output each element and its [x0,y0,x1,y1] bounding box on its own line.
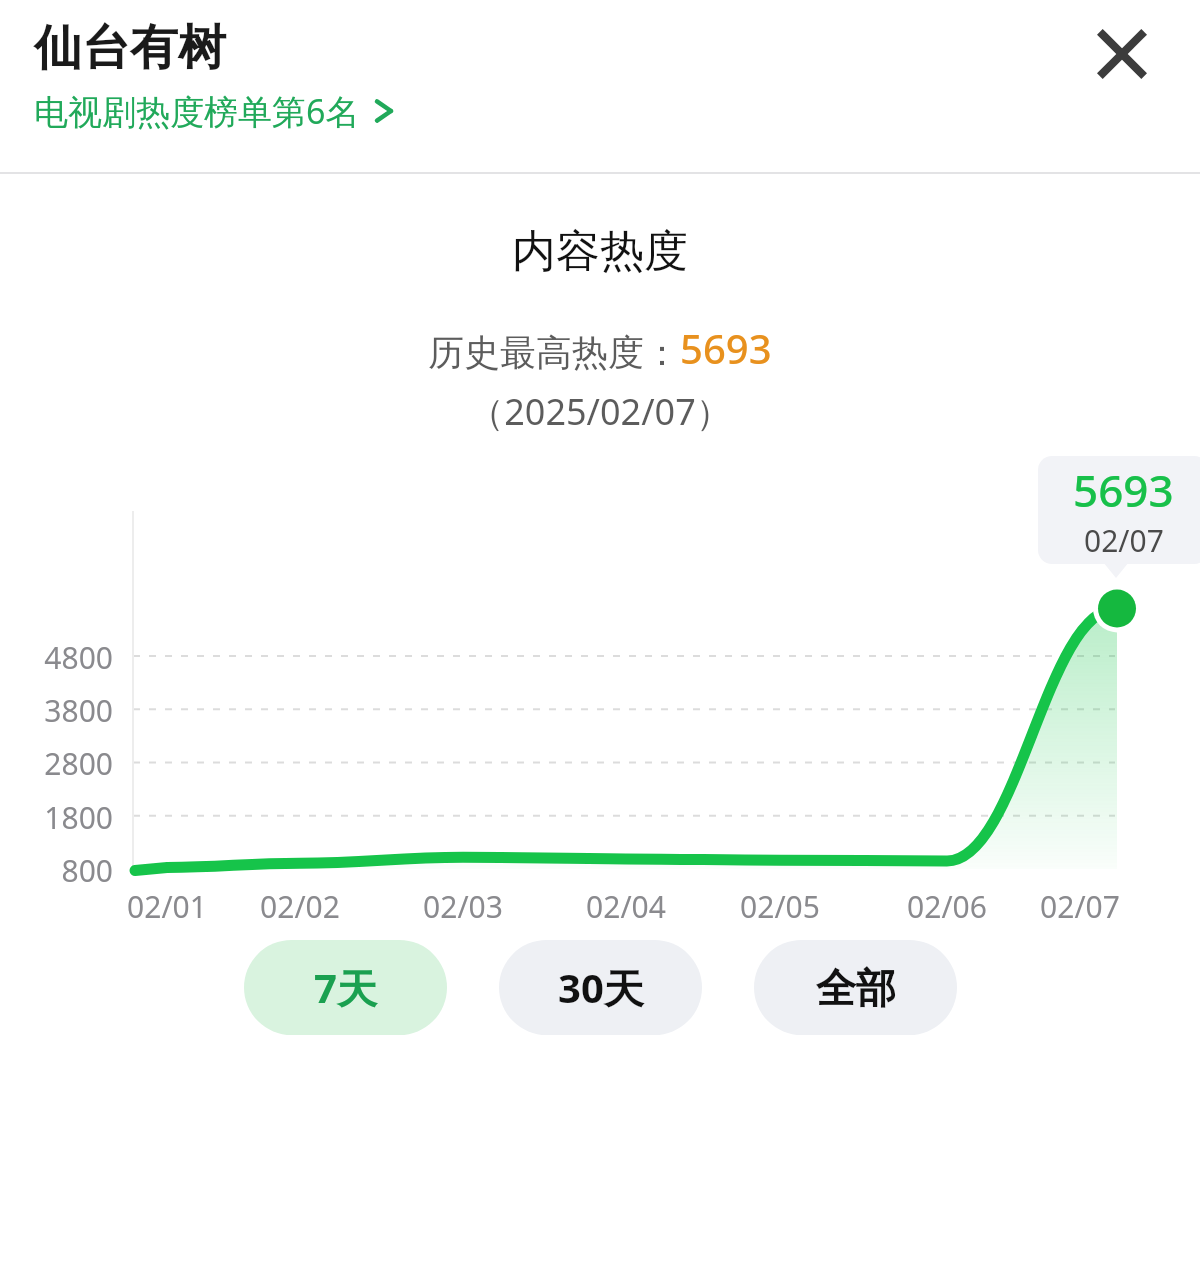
staticText: 4800 [0,637,113,678]
staticText: 电视剧热度榜单第6名 [34,88,360,134]
staticText: 800 [0,850,113,891]
button[interactable]: 7天 [244,940,447,1035]
staticText: 仙台有树 [34,18,226,78]
button[interactable]: 全部 [754,940,957,1035]
staticText: 30天 [558,960,644,1015]
staticText: 历史最高热度： [428,330,680,375]
staticText: 02/05 [710,886,850,927]
staticText: 5693 [1073,460,1174,520]
staticText: 02/03 [393,886,533,927]
staticText: 02/04 [556,886,696,927]
staticText: 02/06 [877,886,1017,927]
staticText: 02/07 [1084,520,1164,561]
staticText: 5693 [680,321,772,375]
button[interactable]: Close [1080,12,1164,96]
button[interactable]: 30天 [499,940,702,1035]
staticText: 2800 [0,743,113,784]
staticText: 1800 [0,797,113,838]
staticText: 02/07 [1010,886,1150,927]
staticText: 02/02 [230,886,370,927]
staticText: 7天 [314,960,377,1015]
staticText: 02/01 [97,886,237,927]
staticText: （2025/02/07） [0,387,1200,436]
staticText: 3800 [0,690,113,731]
staticText: 内容热度 [0,224,1200,279]
staticText: 全部 [816,963,896,1013]
button[interactable]: 电视剧热度榜单第6名 [34,88,394,134]
